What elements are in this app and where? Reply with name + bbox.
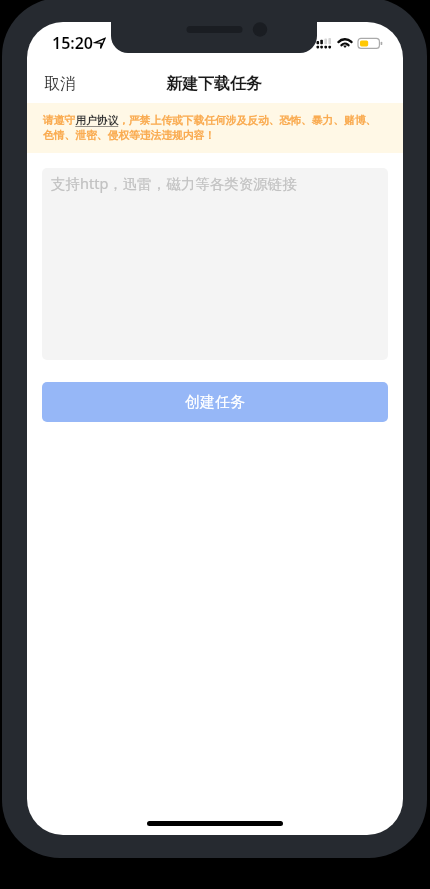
staticText: 15:20 xyxy=(52,32,94,54)
other: Location xyxy=(92,35,108,51)
button[interactable]: 支持http，迅雷，磁力等各类资源链接 xyxy=(42,168,388,360)
staticText: 请遵守用户协议，严禁上传或下载任何涉及反动、恐怖、暴力、赌博、色情、泄密、侵权等… xyxy=(43,114,385,142)
button[interactable]: 创建任务 xyxy=(42,382,388,422)
button[interactable]: 请遵守用户协议，严禁上传或下载任何涉及反动、恐怖、暴力、赌博、色情、泄密、侵权等… xyxy=(27,103,403,153)
button[interactable]: 取消 xyxy=(27,65,93,103)
staticText: 新建下载任务 xyxy=(166,74,262,94)
staticText: 创建任务 xyxy=(185,393,245,412)
staticText: 取消 xyxy=(44,74,76,94)
staticText: 支持http，迅雷，磁力等各类资源链接 xyxy=(51,173,297,193)
